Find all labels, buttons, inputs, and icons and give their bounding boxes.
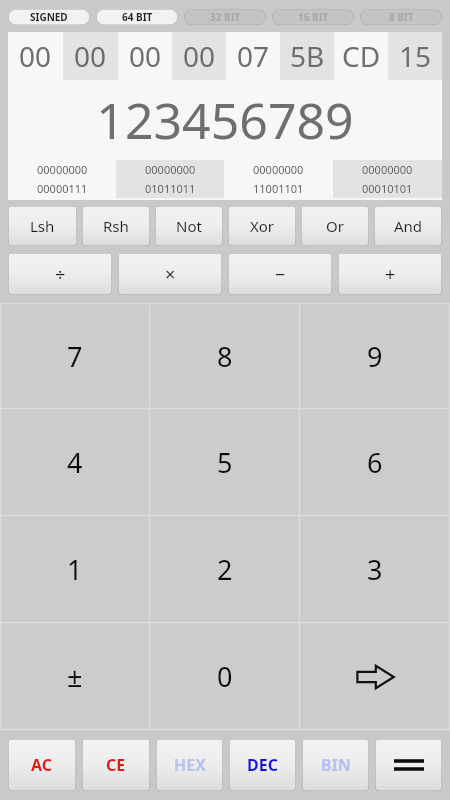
button[interactable]: 00 <box>172 32 226 80</box>
staticText: BIN <box>321 754 351 776</box>
button[interactable]: Equals <box>375 739 442 791</box>
staticText: 2 <box>217 551 233 588</box>
button[interactable]: 7 <box>0 303 150 409</box>
button[interactable]: − <box>228 253 332 295</box>
button[interactable]: 6 <box>300 409 450 516</box>
staticText: 64 BIT <box>122 10 153 24</box>
button[interactable]: + <box>338 253 442 295</box>
staticText: And <box>394 216 423 236</box>
button[interactable]: 64 BIT <box>96 9 178 25</box>
button[interactable]: ± <box>0 623 150 730</box>
button[interactable]: 16 BIT <box>272 9 354 25</box>
staticText: DEC <box>247 754 278 776</box>
button[interactable]: 07 <box>226 32 280 80</box>
staticText: 3 <box>367 551 383 588</box>
staticText: 00 <box>183 37 216 75</box>
button[interactable]: AC <box>8 739 76 791</box>
staticText: 00000000 <box>362 162 413 177</box>
staticText: Or <box>326 216 344 236</box>
staticText: 00 <box>19 37 52 75</box>
staticText: Lsh <box>30 216 55 236</box>
staticText: 15 <box>399 37 432 75</box>
button[interactable]: 0 <box>150 623 300 730</box>
button[interactable]: 15 <box>388 32 442 80</box>
button[interactable]: Lsh <box>8 206 77 246</box>
button[interactable]: SIGNED <box>8 9 90 25</box>
staticText: Xor <box>250 216 275 236</box>
staticText: 00 <box>74 37 107 75</box>
button[interactable]: 32 BIT <box>184 9 266 25</box>
button[interactable]: × <box>118 253 222 295</box>
staticText: × <box>165 262 176 287</box>
button[interactable]: 1 <box>0 516 150 623</box>
staticText: SIGNED <box>30 10 68 24</box>
staticText: 4 <box>67 444 83 481</box>
staticText: 00000000 <box>145 162 196 177</box>
button[interactable]: 00000000 <box>116 160 224 179</box>
staticText: CD <box>342 37 381 75</box>
button[interactable]: 2 <box>150 516 300 623</box>
staticText: Not <box>176 216 202 236</box>
button[interactable]: HEX <box>156 739 223 791</box>
staticText: 8 BIT <box>389 10 414 24</box>
staticText: AC <box>31 754 53 776</box>
staticText: + <box>385 262 396 287</box>
button[interactable]: And <box>374 206 442 246</box>
staticText: CE <box>106 754 126 776</box>
button[interactable]: 4 <box>0 409 150 516</box>
staticText: 07 <box>237 37 270 75</box>
staticText: HEX <box>174 754 206 776</box>
button[interactable]: 00000000 <box>333 160 442 179</box>
button[interactable]: CD <box>334 32 388 80</box>
button[interactable]: Not <box>155 206 223 246</box>
staticText: 16 BIT <box>298 10 329 24</box>
button[interactable]: 00000000 <box>8 160 116 179</box>
staticText: − <box>275 262 286 287</box>
staticText: 5B <box>290 37 325 75</box>
staticText: 0 <box>217 658 233 695</box>
button[interactable]: 00 <box>8 32 63 80</box>
staticText: 00000000 <box>253 162 304 177</box>
button[interactable]: Or <box>301 206 369 246</box>
staticText: 00010101 <box>362 181 413 196</box>
staticText: 1 <box>67 551 83 588</box>
button[interactable]: 00 <box>63 32 118 80</box>
staticText: 9 <box>367 338 383 375</box>
staticText: 7 <box>67 338 83 375</box>
staticText: 11001101 <box>253 181 304 196</box>
button[interactable]: 00000111 <box>8 179 116 198</box>
button[interactable]: BIN <box>302 739 369 791</box>
button[interactable]: 8 BIT <box>360 9 442 25</box>
button[interactable]: 00000000 <box>224 160 333 179</box>
staticText: 01011011 <box>145 181 196 196</box>
button[interactable]: CE <box>82 739 150 791</box>
button[interactable]: DEC <box>229 739 296 791</box>
button[interactable]: ÷ <box>8 253 112 295</box>
staticText: Rsh <box>103 216 129 236</box>
button[interactable]: 5 <box>150 409 300 516</box>
button[interactable]: 11001101 <box>224 179 333 198</box>
staticText: 6 <box>367 444 383 481</box>
button[interactable]: 9 <box>300 303 450 409</box>
button[interactable]: 00 <box>118 32 172 80</box>
staticText: 00000111 <box>37 181 88 196</box>
staticText: 00000000 <box>37 162 88 177</box>
staticText: 5 <box>217 444 233 481</box>
button[interactable]: Rsh <box>82 206 150 246</box>
staticText: 32 BIT <box>210 10 241 24</box>
button[interactable]: Xor <box>228 206 296 246</box>
button[interactable]: 8 <box>150 303 300 409</box>
staticText: 8 <box>217 338 233 375</box>
button[interactable]: 01011011 <box>116 179 224 198</box>
staticText: ± <box>67 658 83 695</box>
button[interactable]: 00010101 <box>333 179 442 198</box>
button[interactable]: 5B <box>280 32 334 80</box>
staticText: 123456789 <box>96 86 354 154</box>
staticText: 00 <box>129 37 162 75</box>
staticText: ÷ <box>55 262 66 287</box>
button[interactable]: 3 <box>300 516 450 623</box>
button[interactable]: Backspace <box>300 623 450 730</box>
